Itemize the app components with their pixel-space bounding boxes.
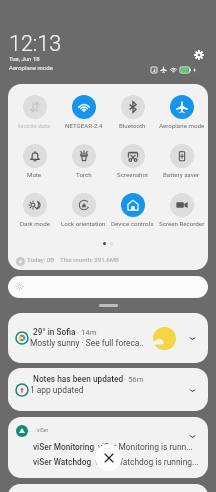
staticText: Mute	[27, 171, 42, 178]
button[interactable]: viSer	[8, 417, 208, 478]
staticText: This month: 291.6MB	[60, 256, 119, 263]
button[interactable]: Dark mode	[10, 193, 59, 231]
button[interactable]: Screen Recorder	[157, 193, 206, 231]
staticText: Aeroplane mode	[9, 64, 53, 71]
button[interactable]: Clear all notifications	[95, 444, 122, 471]
button[interactable]: Screenshot	[108, 144, 157, 182]
staticText: 29° in Sofia	[33, 327, 76, 337]
staticText: 1 app updated	[30, 385, 84, 395]
button[interactable]: Torch	[59, 144, 108, 182]
button[interactable]: Expand Notes notification	[184, 382, 200, 398]
button[interactable]: 29° in Sofia	[8, 313, 208, 363]
button[interactable]: Settings	[193, 49, 205, 61]
staticText: Notes has been updated	[33, 374, 124, 384]
staticText: Dark mode	[20, 220, 50, 227]
button[interactable]: Expand weather notification	[184, 330, 200, 346]
staticText: Bluetooth	[119, 122, 146, 129]
staticText: · 14m	[77, 328, 97, 337]
staticText: Torch	[76, 171, 92, 178]
staticText: · 56m	[124, 375, 144, 384]
staticText: Device controls	[111, 220, 154, 227]
staticText: viSer Monitoring is runn...	[98, 442, 193, 452]
staticText: Mostly sunny · See full foreca..	[30, 338, 144, 348]
button[interactable]: Aeroplane mode	[157, 95, 206, 133]
staticText: Tue, Jun 18	[9, 55, 40, 62]
button[interactable]: Bluetooth	[108, 95, 157, 133]
staticText: Lock orientation	[61, 220, 106, 227]
staticText: Screenshot	[117, 171, 149, 178]
staticText: 12:13	[9, 31, 62, 56]
staticText: Mobile data	[18, 122, 51, 129]
staticText: viSer Watchdog is running...	[95, 457, 199, 467]
staticText: Aeroplane mode	[159, 122, 205, 129]
staticText: viSer	[37, 427, 49, 433]
staticText: viSer Watchdog	[33, 457, 92, 467]
staticText: NETGEAR-2.4	[65, 122, 103, 129]
button[interactable]: NETGEAR-2.4	[59, 95, 108, 133]
button[interactable]: Battery saver	[157, 144, 206, 182]
staticText: viSer Monitoring	[33, 442, 95, 452]
button[interactable]: Mute	[10, 144, 59, 182]
button[interactable]: Expand viSer notification	[184, 428, 200, 444]
button[interactable]: Lock orientation	[59, 193, 108, 231]
button[interactable]: Mobile data	[10, 95, 59, 133]
staticText: Screen Recorder	[159, 220, 205, 227]
staticText: Battery saver	[163, 171, 200, 178]
button[interactable]: Notes has been updated	[8, 368, 208, 411]
button[interactable]: Brightness	[8, 276, 208, 298]
staticText: Today: 0B	[27, 256, 55, 263]
button[interactable]: Device controls	[108, 193, 157, 231]
